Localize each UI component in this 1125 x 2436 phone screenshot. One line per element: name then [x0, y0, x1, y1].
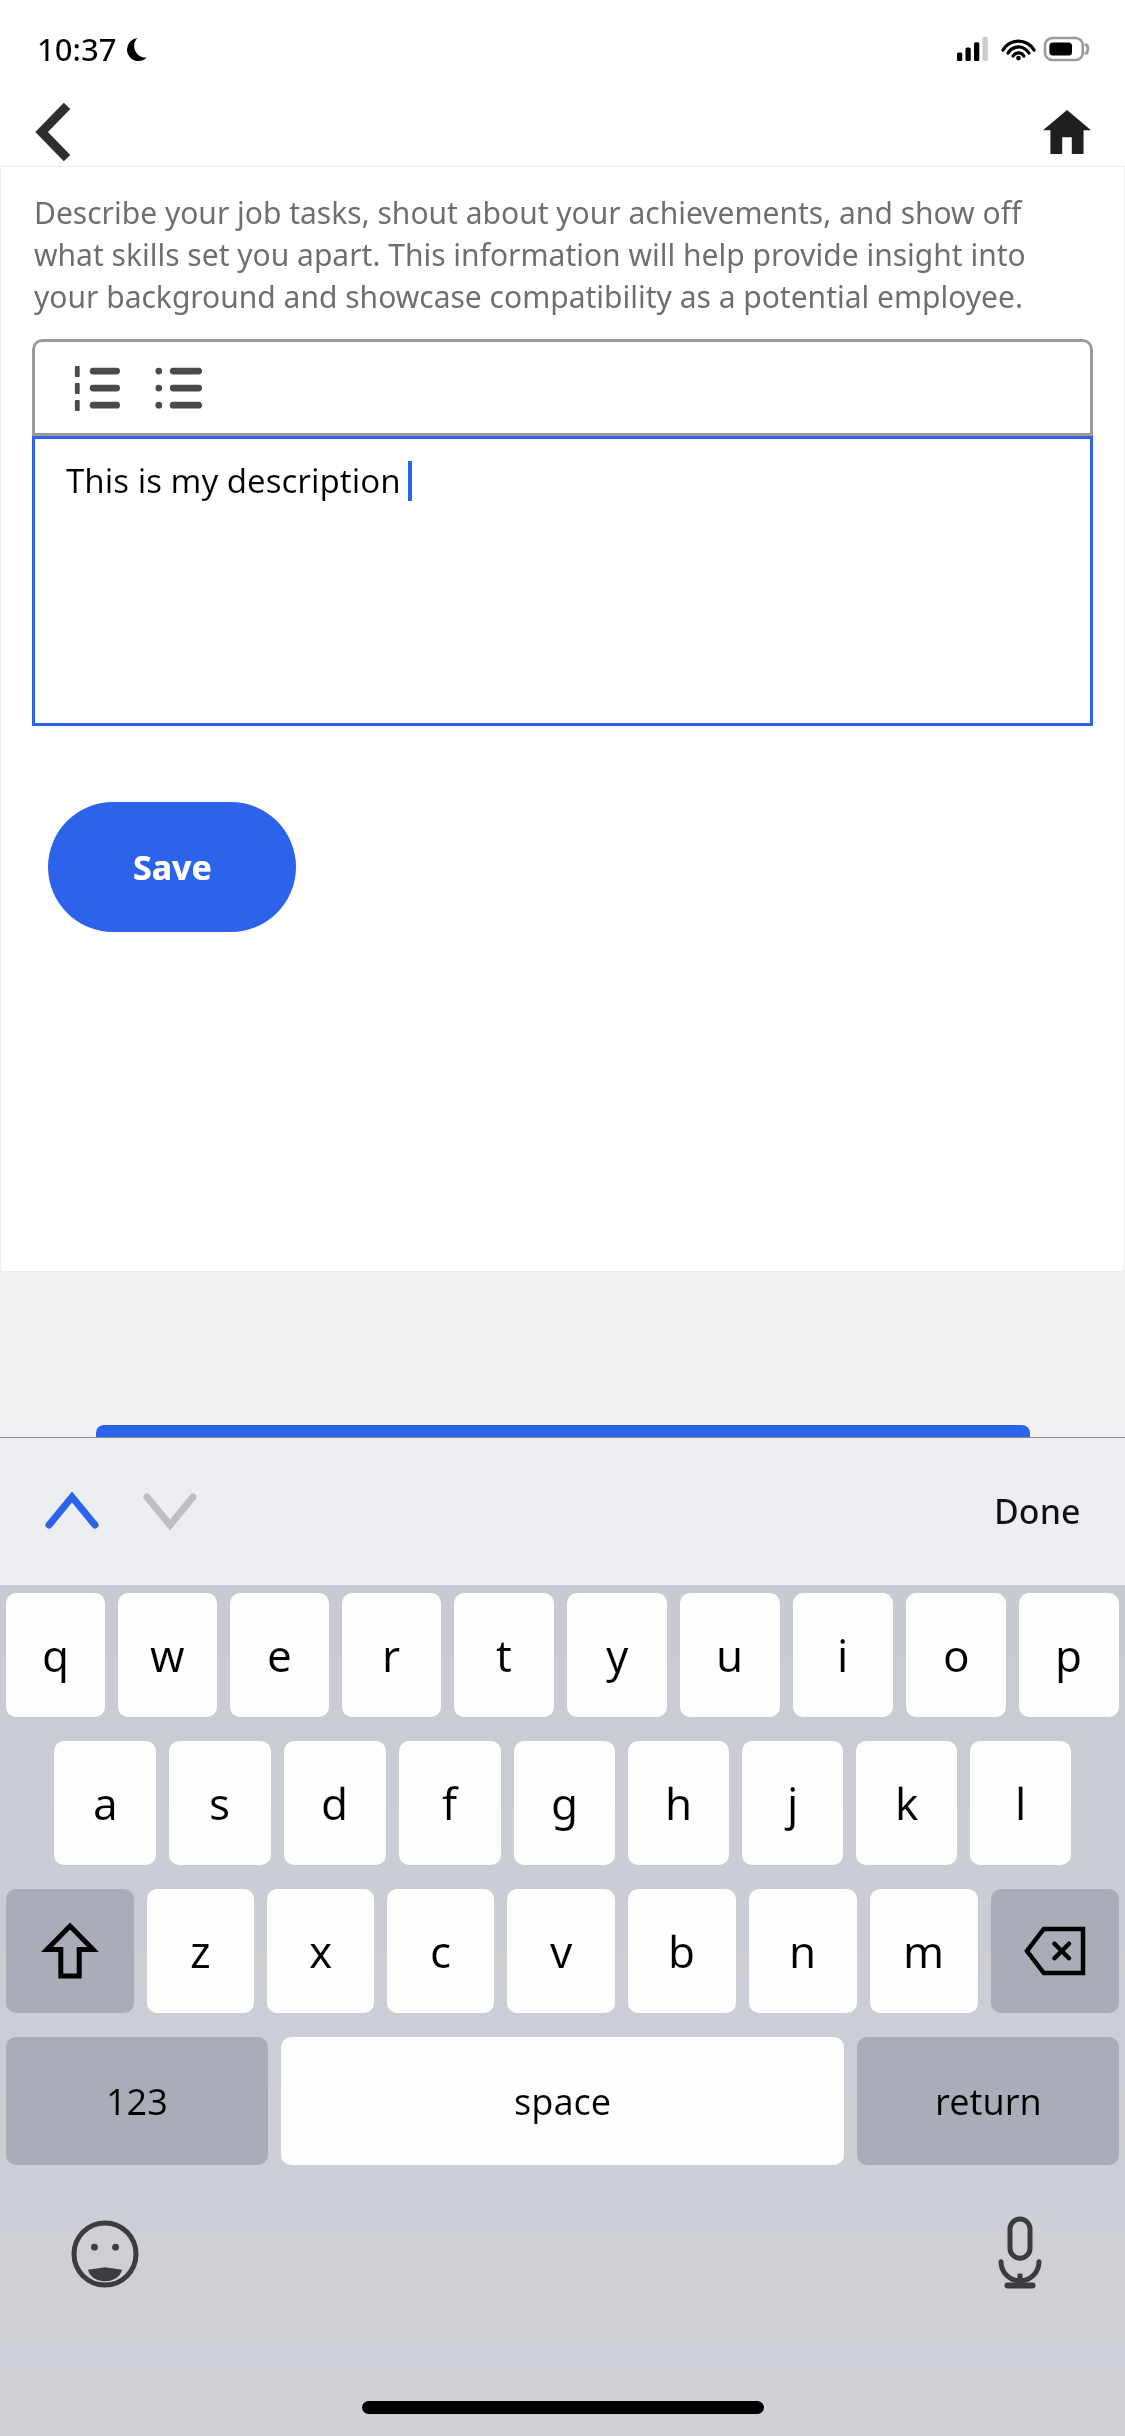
button[interactable]: h	[628, 1741, 729, 1865]
staticText: v	[550, 1921, 573, 1981]
button[interactable]: Bulleted list	[150, 360, 206, 416]
staticText: This is my description	[66, 458, 401, 503]
staticText: f	[442, 1773, 458, 1833]
button[interactable]: Back	[18, 98, 88, 166]
button[interactable]: b	[628, 1889, 736, 2013]
staticText: j	[787, 1773, 799, 1833]
button[interactable]: 123	[6, 2037, 268, 2165]
staticText: t	[496, 1625, 512, 1685]
button[interactable]: u	[680, 1593, 780, 1717]
button[interactable]: Backspace	[991, 1889, 1119, 2013]
staticText: x	[309, 1921, 333, 1981]
button[interactable]: f	[399, 1741, 501, 1865]
button[interactable]: Next field	[128, 1469, 212, 1553]
staticText: q	[42, 1625, 70, 1685]
button[interactable]: x	[267, 1889, 374, 2013]
staticText: u	[716, 1625, 744, 1685]
button[interactable]: m	[870, 1889, 978, 2013]
staticText: r	[382, 1625, 401, 1685]
button[interactable]: z	[147, 1889, 254, 2013]
button[interactable]: return	[857, 2037, 1119, 2165]
button[interactable]: g	[514, 1741, 615, 1865]
button[interactable]: Save	[48, 802, 296, 932]
button[interactable]: s	[169, 1741, 271, 1865]
button[interactable]: q	[6, 1593, 105, 1717]
staticText: l	[1015, 1773, 1027, 1833]
staticText: return	[935, 2077, 1042, 2126]
staticText: n	[789, 1921, 817, 1981]
staticText: w	[150, 1625, 185, 1685]
button[interactable]: Done	[980, 1474, 1095, 1548]
staticText: Done	[994, 1488, 1081, 1534]
staticText: space	[514, 2077, 612, 2126]
staticText: g	[551, 1773, 579, 1833]
staticText: d	[321, 1773, 349, 1833]
staticText: 10:37	[37, 28, 117, 70]
button[interactable]: p	[1019, 1593, 1119, 1717]
button[interactable]: w	[118, 1593, 217, 1717]
button[interactable]: Numbered list	[68, 360, 124, 416]
staticText: m	[903, 1921, 945, 1981]
staticText: z	[190, 1921, 211, 1981]
staticText: e	[267, 1625, 292, 1685]
button[interactable]: r	[342, 1593, 441, 1717]
staticText: i	[837, 1625, 849, 1685]
button[interactable]: Dictation	[975, 2209, 1065, 2299]
button[interactable]: c	[387, 1889, 494, 2013]
staticText: b	[668, 1921, 696, 1981]
button[interactable]: k	[856, 1741, 957, 1865]
button[interactable]: e	[230, 1593, 329, 1717]
button[interactable]: Previous field	[30, 1469, 114, 1553]
staticText: c	[430, 1921, 452, 1981]
button[interactable]: Home	[1031, 98, 1103, 166]
staticText: h	[665, 1773, 693, 1833]
button[interactable]: This is my description	[32, 436, 1093, 726]
staticText: s	[209, 1773, 231, 1833]
staticText: Save	[133, 844, 212, 890]
button[interactable]: v	[507, 1889, 615, 2013]
button[interactable]: d	[284, 1741, 386, 1865]
button[interactable]: a	[54, 1741, 156, 1865]
button[interactable]: i	[793, 1593, 893, 1717]
button[interactable]: Shift	[6, 1889, 134, 2013]
staticText: o	[943, 1625, 970, 1685]
button[interactable]: space	[281, 2037, 844, 2165]
staticText: a	[93, 1773, 118, 1833]
staticText: p	[1055, 1625, 1083, 1685]
staticText: y	[606, 1625, 629, 1685]
button[interactable]: l	[970, 1741, 1071, 1865]
button[interactable]: o	[906, 1593, 1006, 1717]
button[interactable]: t	[454, 1593, 554, 1717]
button[interactable]: n	[749, 1889, 857, 2013]
button[interactable]: y	[567, 1593, 667, 1717]
staticText: 123	[106, 2077, 168, 2126]
button[interactable]: Emoji	[60, 2209, 150, 2299]
staticText: k	[895, 1773, 919, 1833]
button[interactable]: j	[742, 1741, 843, 1865]
staticText: Describe your job tasks, shout about you…	[34, 192, 1095, 317]
